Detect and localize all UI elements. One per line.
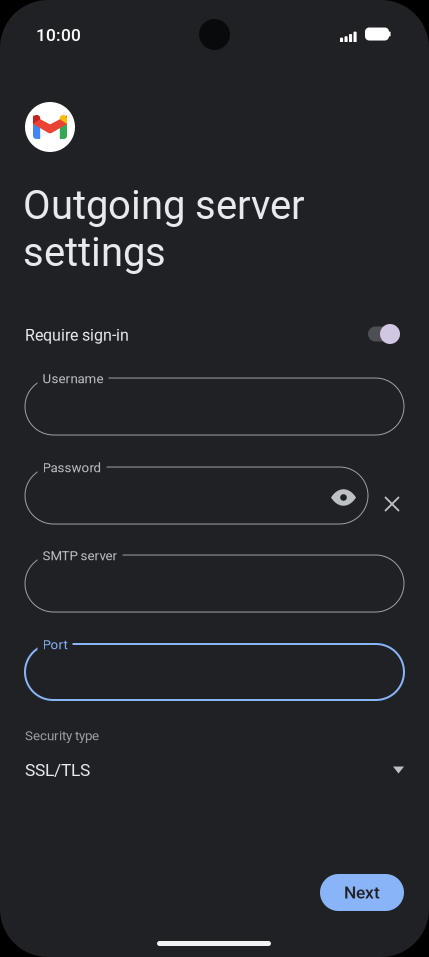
button[interactable]: Require sign-in <box>368 324 400 344</box>
staticText: Password <box>42 460 101 476</box>
staticText: Outgoing server settings <box>23 182 305 276</box>
staticText: Require sign-in <box>25 326 129 345</box>
staticText: SMTP server <box>42 548 117 564</box>
staticText: Security type <box>25 728 99 744</box>
button[interactable]: Next <box>320 874 404 911</box>
staticText: SSL/TLS <box>25 760 90 780</box>
staticText: Port <box>42 637 67 653</box>
staticText: Username <box>42 371 103 387</box>
staticText: Next <box>344 882 380 903</box>
staticText: 10:00 <box>36 25 81 45</box>
button[interactable]: Clear <box>384 496 400 512</box>
button[interactable]: Show password <box>331 491 356 504</box>
button[interactable]: SSL/TLS <box>25 757 404 783</box>
